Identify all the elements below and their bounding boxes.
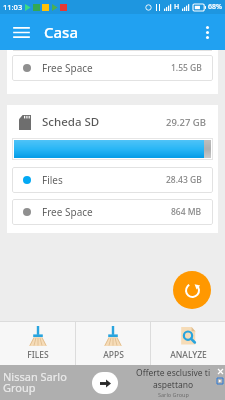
button[interactable]: Scheda SD xyxy=(7,105,218,233)
staticText: Nissan Sarlo Group xyxy=(3,369,67,396)
staticText: 11:03 xyxy=(3,2,23,12)
staticText: APPS xyxy=(103,349,124,361)
staticText: Free Space xyxy=(42,61,93,75)
staticText: Scheda SD xyxy=(42,114,100,130)
button[interactable]: More options xyxy=(193,18,221,46)
button[interactable]: Refresh xyxy=(173,271,211,309)
staticText: 28.43 GB xyxy=(166,174,202,186)
button[interactable]: Free Space xyxy=(12,55,213,81)
button[interactable]: Close ad xyxy=(216,367,224,375)
button[interactable]: FILES xyxy=(0,322,75,365)
staticText: Free Space xyxy=(42,205,93,219)
button[interactable]: Files xyxy=(12,167,213,193)
staticText: H xyxy=(174,2,180,12)
staticText: FILES xyxy=(27,349,49,361)
staticText: aspettano xyxy=(153,379,194,391)
staticText: Casa xyxy=(44,22,78,42)
button[interactable]: ANALYZE xyxy=(151,322,225,365)
staticText: 864 MB xyxy=(171,206,202,218)
button[interactable]: APPS xyxy=(76,322,150,365)
button[interactable]: Free Space xyxy=(12,199,213,225)
staticText: Files xyxy=(42,173,63,187)
staticText: ANALYZE xyxy=(170,349,207,361)
button[interactable]: Ad info xyxy=(216,377,224,385)
button[interactable]: Nissan Sarlo Group xyxy=(0,365,225,400)
staticText: Sarlo Group xyxy=(158,391,189,398)
staticText: Offerte esclusive ti xyxy=(136,367,211,379)
staticText: 29.27 GB xyxy=(166,116,206,129)
button[interactable]: Open navigation menu xyxy=(6,17,36,47)
staticText: 68% xyxy=(208,2,222,12)
staticText: 1.55 GB xyxy=(171,62,202,74)
